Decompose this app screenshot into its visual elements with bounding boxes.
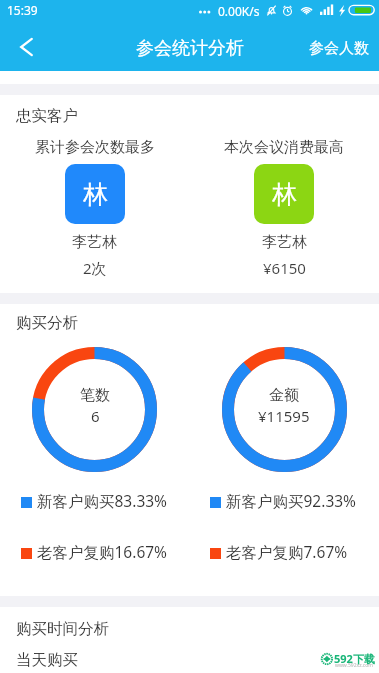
staticText: 林 xyxy=(272,179,297,210)
staticText: 参会统计分析 xyxy=(136,37,244,60)
button[interactable]: 老客户复购7.67% xyxy=(210,541,379,562)
staticText: ¥6150 xyxy=(263,258,306,278)
staticText: 参会人数 xyxy=(309,39,369,58)
staticText: 购买分析 xyxy=(16,313,78,333)
staticText: 林 xyxy=(83,179,108,210)
button[interactable]: 老客户复购16.67% xyxy=(21,541,189,562)
button[interactable]: Back xyxy=(0,25,48,71)
staticText: 累计参会次数最多 xyxy=(35,138,155,157)
staticText: 笔数 xyxy=(80,386,110,405)
button[interactable]: 参会人数 xyxy=(299,27,379,70)
staticText: 老客户复购7.67% xyxy=(226,541,348,562)
staticText: 老客户复购16.67% xyxy=(37,541,167,562)
staticText: 忠实客户 xyxy=(16,106,78,126)
staticText: 购买时间分析 xyxy=(16,619,109,639)
staticText: 592下载 xyxy=(334,651,375,666)
staticText: 新客户购买83.33% xyxy=(37,490,167,511)
staticText: 本次会议消费最高 xyxy=(224,138,344,157)
staticText: 当天购买 xyxy=(16,650,78,670)
staticText: 15:39 xyxy=(7,2,38,18)
staticText: 李艺林 xyxy=(72,233,117,252)
staticText: ¥11595 xyxy=(258,406,310,426)
staticText: 李艺林 xyxy=(262,233,307,252)
staticText: 0.00K/s xyxy=(218,3,260,19)
staticText: 2次 xyxy=(83,258,107,278)
staticText: www.592xz.com xyxy=(335,662,373,669)
staticText: 6 xyxy=(91,406,100,426)
button[interactable]: 新客户购买92.33% xyxy=(210,490,379,511)
button[interactable]: 新客户购买83.33% xyxy=(21,490,189,511)
staticText: 金额 xyxy=(269,386,299,405)
staticText: 新客户购买92.33% xyxy=(226,490,356,511)
